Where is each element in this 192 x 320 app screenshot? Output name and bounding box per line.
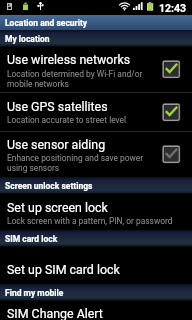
button[interactable]: Use GPS satellites [0, 93, 192, 131]
staticText: Set up screen lock [7, 200, 108, 215]
staticText: SIM Change Alert [7, 306, 103, 320]
other: Toggle setting [162, 103, 181, 122]
staticText: My location [5, 34, 50, 44]
staticText: Location and security [5, 18, 88, 28]
staticText: Use sensor aiding [7, 137, 106, 152]
other: Toggle setting [162, 145, 181, 164]
staticText: Screen unlock settings [5, 181, 93, 191]
staticText: Use wireless networks [7, 52, 131, 67]
staticText: 12:43 [159, 2, 187, 14]
button[interactable]: Use wireless networks [0, 46, 192, 92]
staticText: Find my mobile [5, 288, 64, 298]
button[interactable]: Set up SIM card lock [0, 246, 192, 284]
staticText: Location accurate to street level [7, 115, 127, 125]
staticText: Lock screen with a pattern, PIN, or pass… [7, 216, 173, 226]
staticText: Location determined by Wi-Fi and/or mobi… [7, 69, 143, 89]
button[interactable]: Set up screen lock [0, 193, 192, 230]
staticText: Enhance positioning and save power using… [7, 153, 144, 173]
button[interactable]: SIM Change Alert [0, 301, 192, 320]
staticText: Use GPS satellites [7, 99, 108, 114]
other: Toggle setting [162, 60, 181, 79]
button[interactable]: Use sensor aiding [0, 132, 192, 177]
staticText: Set up SIM card lock [7, 262, 120, 277]
staticText: SIM card lock [5, 234, 58, 244]
